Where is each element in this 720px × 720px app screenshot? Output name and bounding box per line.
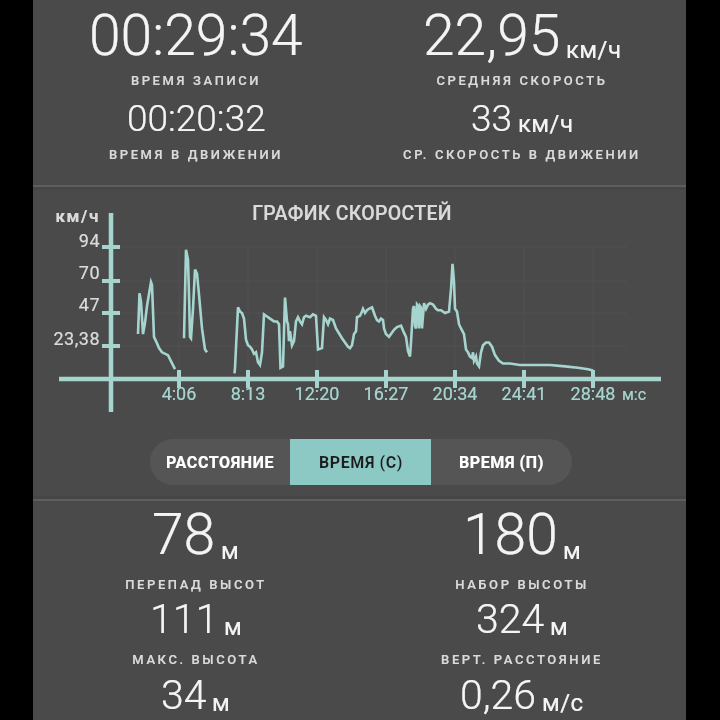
staticText: км/ч [566, 36, 622, 64]
staticText: 111 [150, 595, 219, 643]
staticText: ВРЕМЯ (С) [319, 453, 403, 472]
staticText: м [550, 613, 569, 641]
staticText: 24:41 [464, 383, 584, 404]
staticText: ВРЕМЯ ЗАПИСИ [0, 73, 506, 88]
staticText: 70 [0, 262, 100, 283]
staticText: 12:20 [257, 383, 377, 404]
staticText: 324 [476, 595, 545, 643]
staticText: НАБОР ВЫСОТЫ [212, 577, 720, 592]
staticText: ВЕРТ. РАССТОЯНИЕ [212, 652, 720, 667]
button[interactable]: ВРЕМЯ (С) [290, 439, 431, 485]
staticText: 47 [0, 294, 100, 315]
staticText: 33 [471, 97, 513, 140]
staticText: 94 [0, 230, 100, 251]
staticText: ВРЕМЯ В ДВИЖЕНИИ [0, 147, 506, 162]
staticText: м/с [542, 689, 584, 717]
staticText: ПЕРЕПАД ВЫСОТ [0, 577, 506, 592]
staticText: СРЕДНЯЯ СКОРОСТЬ [212, 73, 720, 88]
staticText: 78 [152, 501, 216, 568]
staticText: 0,26 [460, 671, 537, 719]
staticText: м [221, 537, 240, 565]
staticText: м [563, 537, 582, 565]
staticText: 00:29:34 [89, 2, 303, 69]
staticText: 180 [463, 501, 558, 568]
staticText: 34 [161, 671, 207, 719]
staticText: ГРАФИК СКОРОСТЕЙ [42, 202, 662, 225]
staticText: МАКС. ВЫСОТА [0, 652, 506, 667]
staticText: м:с [622, 385, 647, 404]
staticText: 00:20:32 [127, 97, 266, 140]
staticText: РАССТОЯНИЕ [166, 453, 275, 472]
staticText: 22,95 [423, 2, 561, 69]
staticText: 28:48 [533, 383, 653, 404]
button[interactable]: РАССТОЯНИЕ [150, 439, 290, 485]
staticText: ВРЕМЯ (П) [459, 453, 544, 472]
staticText: м [224, 613, 243, 641]
staticText: км/ч [0, 206, 100, 226]
staticText: 8:13 [188, 383, 308, 404]
staticText: 16:27 [326, 383, 446, 404]
staticText: 20:34 [395, 383, 515, 404]
staticText: км/ч [518, 110, 574, 138]
button[interactable]: ВРЕМЯ (П) [431, 439, 572, 485]
staticText: м [212, 689, 231, 717]
staticText: 4:06 [119, 383, 239, 404]
staticText: СР. СКОРОСТЬ В ДВИЖЕНИИ [212, 147, 720, 162]
staticText: 23,38 [0, 328, 100, 349]
